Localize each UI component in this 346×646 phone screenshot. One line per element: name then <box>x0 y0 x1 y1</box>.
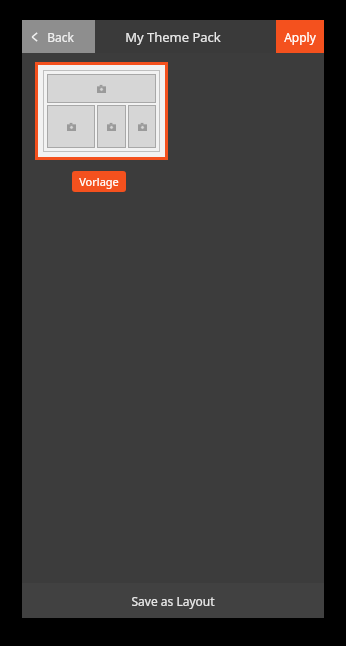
button[interactable]: Back <box>22 20 95 53</box>
staticText: Vorlage <box>79 174 119 189</box>
button[interactable]: Vorlage <box>72 171 126 192</box>
button[interactable]: Save as Layout <box>22 583 324 618</box>
staticText: My Theme Pack <box>125 28 221 46</box>
staticText: Save as Layout <box>131 593 215 609</box>
button[interactable] <box>38 65 165 157</box>
staticText: Apply <box>284 29 316 45</box>
staticText: Back <box>47 29 74 45</box>
button[interactable]: Apply <box>276 20 324 53</box>
